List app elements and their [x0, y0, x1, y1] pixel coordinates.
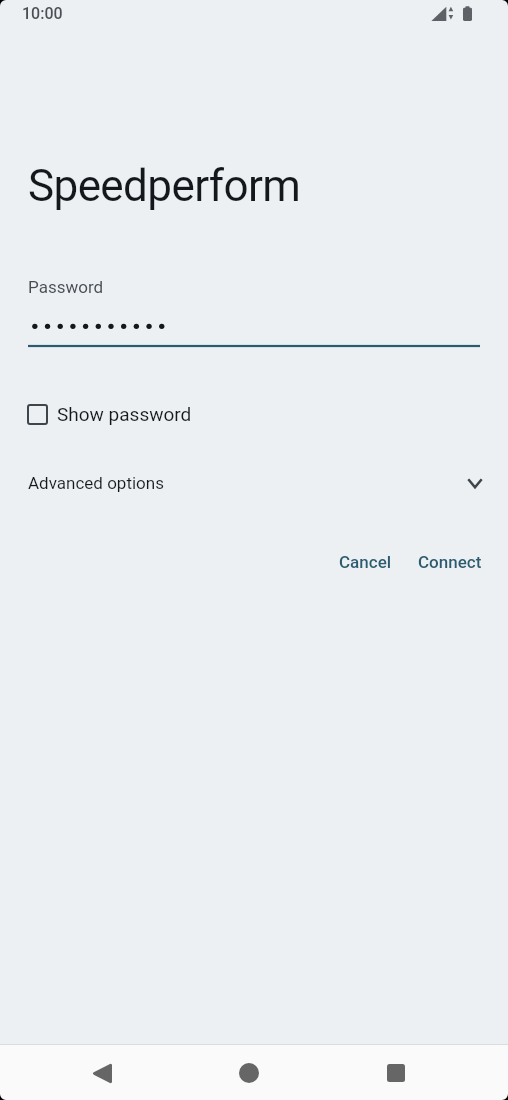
staticText: Cancel	[339, 552, 392, 572]
button[interactable]: Back	[78, 1049, 126, 1097]
staticText: Password	[28, 277, 104, 297]
staticText: Advanced options	[28, 473, 164, 493]
button[interactable]: Password field	[28, 270, 480, 348]
button[interactable]: Connect	[406, 546, 494, 578]
button[interactable]: Advanced options	[0, 464, 508, 502]
button[interactable]: Recent apps	[372, 1049, 420, 1097]
button[interactable]: Home	[225, 1049, 273, 1097]
button[interactable]: Show password	[0, 396, 508, 432]
button[interactable]: Cancel	[327, 546, 404, 578]
staticText: Speedperform	[28, 160, 301, 212]
staticText: 10:00	[22, 4, 63, 23]
staticText: Show password	[57, 403, 192, 425]
staticText: Connect	[418, 552, 482, 572]
